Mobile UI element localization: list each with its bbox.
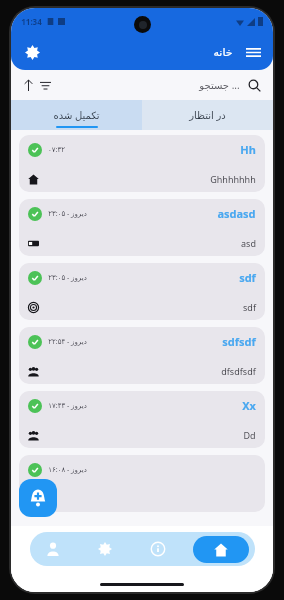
button[interactable]: تکمیل شده: [11, 100, 142, 130]
staticText: 11:34: [21, 16, 42, 27]
button[interactable]: در انتظار: [142, 100, 273, 130]
staticText: dfsdfsdf: [221, 365, 256, 377]
staticText: asdasd: [217, 206, 256, 221]
staticText: تکمیل شده: [53, 108, 100, 122]
staticText: asd: [241, 237, 256, 249]
staticText: sdf: [243, 301, 256, 313]
staticText: دیروز - ۲۳:۰۵: [48, 273, 87, 283]
button[interactable]: Settings: [19, 39, 45, 65]
button[interactable]: دیروز - ۲۲:۵۴: [19, 327, 265, 384]
button[interactable]: Add reminder: [19, 479, 57, 517]
staticText: در انتظار: [189, 108, 226, 122]
button[interactable]: دیروز - ۱۷:۴۳: [19, 391, 265, 448]
button[interactable]: Menu: [241, 40, 265, 64]
button[interactable]: دیروز - ۲۳:۰۵: [19, 199, 265, 256]
button[interactable]: Home: [193, 536, 249, 563]
staticText: sdf: [239, 270, 256, 285]
staticText: sdfsdf: [222, 334, 256, 349]
staticText: دیروز - ۱۶:۰۸: [48, 465, 87, 475]
staticText: دیروز - ۲۳:۰۵: [48, 209, 87, 219]
button[interactable]: Info: [141, 532, 175, 566]
staticText: Dd: [243, 429, 256, 441]
button[interactable]: دیروز - ۲۳:۰۵: [19, 263, 265, 320]
staticText: Hh: [240, 142, 256, 157]
staticText: Ghhhhhhh: [210, 173, 256, 185]
staticText: دیروز - ۲۲:۵۴: [48, 337, 87, 347]
staticText: ۰۷:۳۲: [48, 145, 65, 155]
button[interactable]: Settings: [88, 532, 122, 566]
button[interactable]: ۰۷:۳۲: [19, 135, 265, 192]
button[interactable]: Profile: [36, 532, 70, 566]
button[interactable]: جستجو ...: [17, 70, 267, 100]
button[interactable]: دیروز - ۱۶:۰۸: [19, 455, 265, 512]
staticText: دیروز - ۱۷:۴۳: [48, 401, 87, 411]
staticText: Xx: [242, 398, 256, 413]
staticText: جستجو ...: [199, 78, 240, 92]
staticText: خانه: [213, 46, 233, 59]
